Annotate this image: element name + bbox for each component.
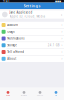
staticText: Apple ID, iCloud, Media <box>10 15 45 18</box>
button[interactable]: Notifications <box>0 35 64 42</box>
staticText: Search <box>37 94 43 96</box>
staticText: › <box>61 43 62 47</box>
staticText: Browse <box>21 94 27 96</box>
staticText: Settings <box>23 3 40 8</box>
staticText: › <box>61 12 62 17</box>
button[interactable]: Account <box>0 22 64 28</box>
staticText: ◼◼◼ <box>55 0 61 3</box>
staticText: › <box>61 50 62 54</box>
staticText: › <box>61 23 62 27</box>
staticText: Home <box>6 94 10 96</box>
staticText: 24.1 GB <box>48 43 60 47</box>
button[interactable]: Jane Appleseed <box>0 10 64 19</box>
staticText: Jane Appleseed <box>10 11 33 14</box>
button[interactable]: Me <box>48 87 64 100</box>
staticText: › <box>61 37 62 40</box>
button[interactable]: Tell a Friend <box>0 49 64 55</box>
staticText: › <box>61 57 62 60</box>
button[interactable]: Home <box>0 87 16 100</box>
staticText: Notifications <box>7 37 24 40</box>
button[interactable]: Browse <box>16 87 32 100</box>
staticText: Tell a Friend <box>7 50 24 54</box>
staticText: Usage <box>7 30 15 33</box>
staticText: 9:41 <box>3 0 10 3</box>
staticText: › <box>61 30 62 33</box>
button[interactable]: Storage <box>0 42 64 49</box>
staticText: Storage <box>7 43 17 47</box>
staticText: About <box>7 57 16 60</box>
button[interactable]: Usage <box>0 29 64 35</box>
button[interactable]: About <box>0 56 64 62</box>
button[interactable]: Search <box>32 87 48 100</box>
staticText: Me <box>55 94 57 96</box>
staticText: Account <box>7 23 18 27</box>
